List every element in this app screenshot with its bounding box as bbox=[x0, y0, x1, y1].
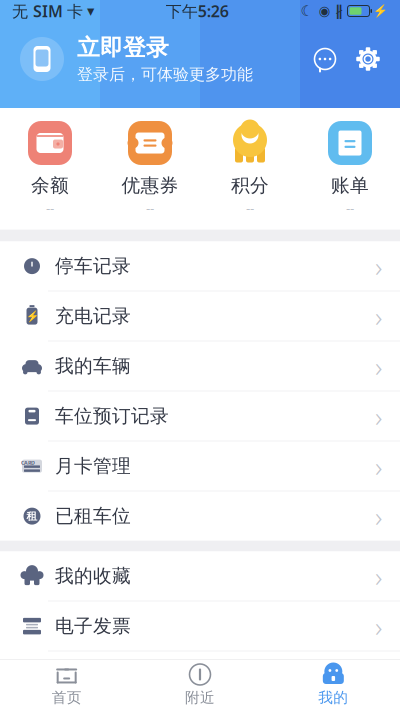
staticText: 充电记录 bbox=[55, 305, 131, 328]
staticText: 积分 bbox=[231, 174, 269, 197]
staticText: 已租车位 bbox=[55, 505, 131, 528]
staticText: ⚡ bbox=[25, 310, 38, 322]
staticText: 立即登录 bbox=[77, 34, 169, 62]
button[interactable]: 余额 bbox=[0, 121, 100, 217]
staticText: -- bbox=[46, 199, 54, 217]
button[interactable]: 附近 bbox=[133, 660, 267, 710]
button[interactable]: 我的 bbox=[267, 660, 400, 710]
staticText: 电子发票 bbox=[55, 615, 131, 638]
staticText: › bbox=[375, 347, 382, 385]
staticText: 我的收藏 bbox=[55, 565, 131, 588]
staticText: › bbox=[375, 497, 382, 535]
staticText: 登录后，可体验更多功能 bbox=[77, 65, 253, 84]
staticText: -- bbox=[346, 199, 354, 217]
staticText: 车位预订记录 bbox=[55, 405, 169, 428]
staticText: 下午5:26 bbox=[166, 0, 229, 22]
staticText: ▾ bbox=[87, 3, 94, 19]
staticText: ◉ bbox=[318, 3, 330, 18]
staticText: 停车记录 bbox=[55, 255, 131, 278]
staticText: › bbox=[375, 447, 382, 485]
staticText: 首页 bbox=[52, 688, 82, 706]
staticText: 申诉记录 bbox=[55, 665, 131, 688]
button[interactable]: CARD bbox=[0, 442, 400, 492]
button[interactable]: 积分 bbox=[200, 121, 300, 217]
button[interactable]: 优惠券 bbox=[100, 121, 200, 217]
staticText: ⚡ bbox=[373, 4, 388, 18]
staticText: › bbox=[375, 297, 382, 335]
button[interactable]: 租 bbox=[0, 492, 400, 541]
staticText: › bbox=[375, 557, 382, 595]
staticText: 无 SIM 卡 bbox=[12, 0, 83, 22]
button[interactable]: ⚡ bbox=[0, 292, 400, 342]
button[interactable]: 我的车辆 bbox=[0, 342, 400, 392]
button[interactable]: 我的收藏 bbox=[0, 552, 400, 602]
button[interactable]: 账单 bbox=[300, 121, 400, 217]
staticText: › bbox=[375, 397, 382, 435]
button[interactable]: 立即登录 bbox=[20, 34, 253, 84]
staticText: 月卡管理 bbox=[55, 455, 131, 478]
staticText: › bbox=[375, 247, 382, 285]
staticText: 账单 bbox=[331, 174, 369, 197]
button[interactable]: 停车记录 bbox=[0, 242, 400, 292]
staticText: 余额 bbox=[31, 174, 69, 197]
button[interactable]: 设置 bbox=[356, 47, 380, 71]
button[interactable]: 申诉记录 bbox=[0, 652, 400, 701]
button[interactable]: 电子发票 bbox=[0, 602, 400, 652]
staticText: CARD bbox=[21, 459, 35, 466]
button[interactable]: 消息 bbox=[312, 46, 338, 72]
staticText: 附近 bbox=[185, 688, 215, 706]
staticText: -- bbox=[146, 199, 154, 217]
staticText: 优惠券 bbox=[121, 174, 178, 197]
button[interactable]: 车位预订记录 bbox=[0, 392, 400, 442]
staticText: › bbox=[375, 607, 382, 645]
staticText: 我的 bbox=[318, 688, 348, 706]
staticText: ∦ bbox=[335, 3, 342, 19]
staticText: ☾ bbox=[300, 3, 313, 19]
staticText: 租 bbox=[26, 510, 37, 523]
button[interactable]: 首页 bbox=[0, 660, 133, 710]
staticText: 我的车辆 bbox=[55, 355, 131, 378]
staticText: -- bbox=[246, 199, 254, 217]
